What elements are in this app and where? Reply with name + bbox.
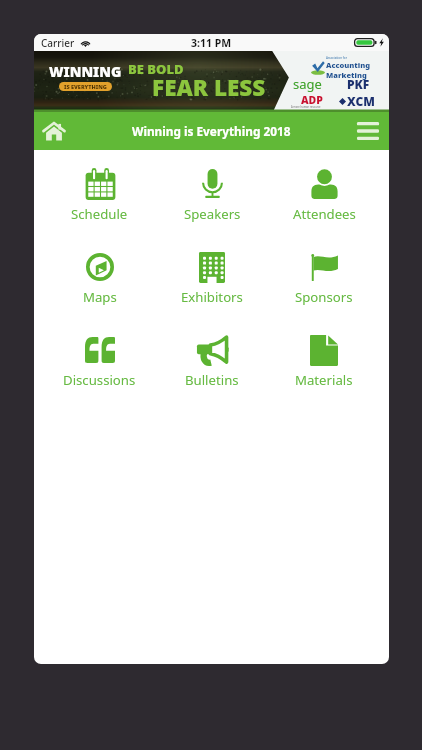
button[interactable]: Schedule	[43, 150, 156, 233]
staticText: Attendees	[293, 205, 356, 223]
staticText: Materials	[295, 371, 353, 389]
staticText: Exhibitors	[181, 288, 243, 306]
staticText: Association for	[326, 56, 347, 60]
button[interactable]: Home	[34, 112, 74, 150]
staticText: ADP	[301, 93, 323, 107]
button[interactable]: Speakers	[156, 150, 268, 233]
staticText: FEAR LESS	[152, 72, 266, 103]
button[interactable]: Attendees	[268, 150, 380, 233]
staticText: sage	[293, 75, 322, 93]
staticText: Carrier	[41, 36, 75, 50]
staticText: Marketing	[326, 70, 367, 80]
staticText: WINNING	[49, 62, 122, 81]
staticText: A more human resource	[291, 105, 321, 109]
staticText: Sponsors	[295, 288, 353, 306]
staticText: Schedule	[71, 205, 128, 223]
button[interactable]: Discussions	[43, 316, 156, 399]
staticText: Bulletins	[185, 371, 239, 389]
button[interactable]: Menu	[347, 112, 389, 150]
staticText: BE BOLD	[128, 60, 184, 78]
staticText: PKF	[347, 76, 370, 92]
button[interactable]: Materials	[268, 316, 380, 399]
button[interactable]: Bulletins	[156, 316, 268, 399]
button[interactable]: Exhibitors	[156, 233, 268, 316]
staticText: XCM	[347, 93, 375, 109]
button[interactable]: Sponsors	[268, 233, 380, 316]
staticText: IS EVERYTHING	[64, 83, 107, 90]
staticText: Discussions	[63, 371, 136, 389]
staticText: Maps	[83, 288, 117, 306]
button[interactable]: Maps	[43, 233, 156, 316]
staticText: Accounting	[326, 60, 371, 70]
staticText: 3:11 PM	[191, 36, 232, 50]
staticText: Speakers	[184, 205, 241, 223]
staticText: Winning is Everything 2018	[132, 123, 291, 139]
